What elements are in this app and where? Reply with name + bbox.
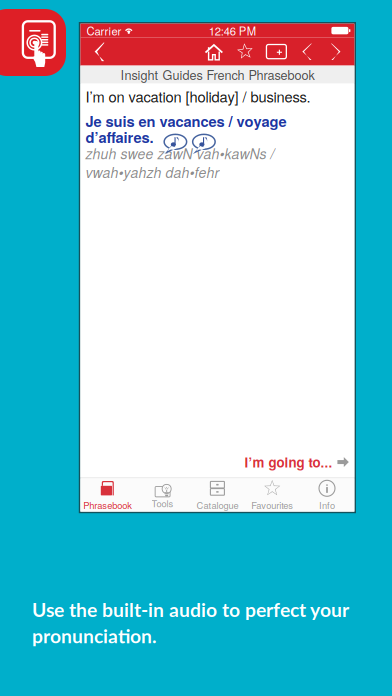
button[interactable]: Back (82, 38, 116, 66)
button[interactable]: Previous phrase (292, 38, 321, 66)
staticText: Tools (152, 496, 174, 510)
button[interactable]: Add to list (260, 38, 292, 66)
button[interactable]: Info (300, 478, 354, 512)
button[interactable]: Phrasebook (80, 478, 135, 512)
staticText: d’affaires. (85, 127, 153, 148)
staticText: Info (319, 498, 335, 512)
staticText: I’m going to... (244, 452, 332, 472)
button[interactable]: I’m going to... (244, 452, 349, 472)
staticText: Favourites (251, 498, 293, 512)
button[interactable]: Tools (135, 478, 190, 512)
staticText: Phrasebook (83, 498, 132, 512)
staticText: I’m on vacation [holiday] / business. (85, 86, 310, 107)
button[interactable]: Favourites (245, 478, 300, 512)
staticText: zhuh swee zawN vah•kawNs / (85, 144, 274, 163)
button[interactable]: Favourite (230, 38, 260, 66)
staticText: Je suis en vacances / voyage (85, 111, 286, 132)
staticText: 12:46 PM (209, 22, 256, 39)
staticText: Insight Guides French Phrasebook (120, 65, 314, 84)
button[interactable]: Home (197, 38, 230, 66)
button[interactable]: Next phrase (321, 38, 350, 66)
button[interactable]: Insight Guides Phrasebook app icon (0, 0, 80, 80)
staticText: vwah•yahzh dah•fehr (85, 162, 219, 182)
button[interactable]: Play pronunciation (163, 134, 187, 155)
button[interactable]: Play pronunciation slowly (192, 134, 216, 155)
staticText: Use the built-in audio to perfect your (32, 598, 349, 621)
staticText: pronunciation. (32, 624, 157, 647)
staticText: Carrier (86, 22, 121, 39)
button[interactable]: Catalogue (190, 478, 245, 512)
staticText: Catalogue (196, 498, 238, 512)
